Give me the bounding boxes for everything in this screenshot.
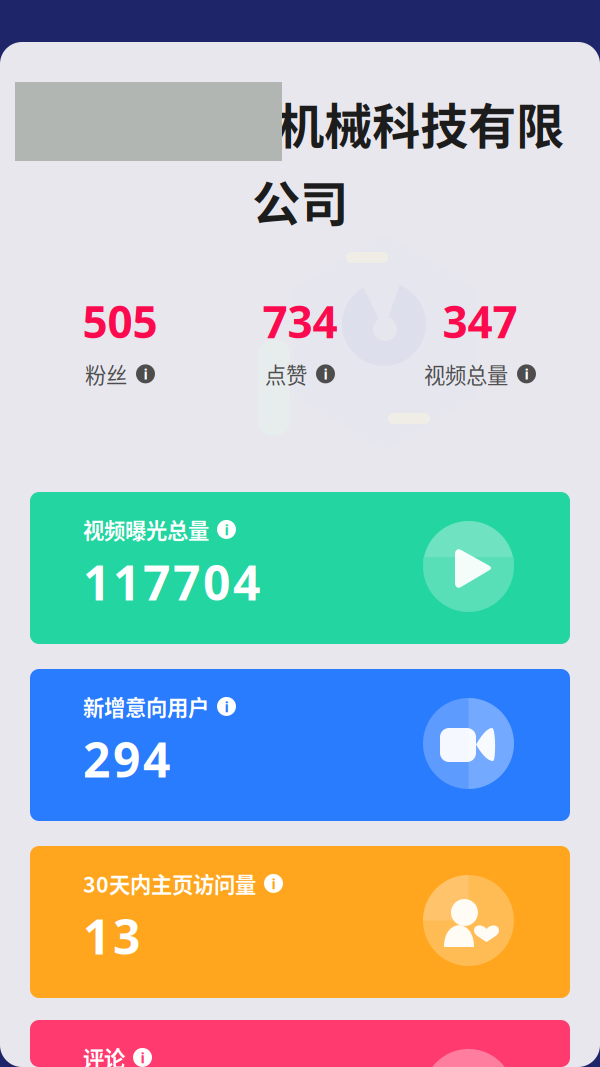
button[interactable]: 视频曝光总量 — [30, 492, 570, 644]
staticText: i — [140, 1048, 144, 1067]
staticText: i — [524, 364, 528, 384]
button[interactable]: 评论 — [30, 1020, 570, 1067]
staticText: 粉丝 — [85, 358, 127, 389]
button[interactable]: 新增意向用户 — [30, 669, 570, 821]
staticText: 505 — [82, 292, 157, 350]
staticText: i — [323, 364, 327, 384]
staticText: 13 — [83, 904, 140, 968]
staticText: 347 — [442, 292, 517, 350]
staticText: 新增意向用户 — [83, 691, 209, 722]
staticText: i — [271, 874, 275, 893]
button[interactable]: 734 — [210, 292, 390, 389]
staticText: 30天内主页访问量 — [83, 868, 256, 899]
staticText: 点赞 — [265, 358, 307, 389]
button[interactable]: 30天内主页访问量 — [30, 846, 570, 998]
staticText: i — [143, 364, 147, 384]
staticText: 青岛德瑞特机械科技有限公司 — [36, 88, 564, 235]
staticText: 评论 — [83, 1042, 125, 1067]
staticText: 视频曝光总量 — [83, 514, 209, 545]
staticText: i — [224, 697, 228, 716]
staticText: 视频总量 — [424, 358, 508, 389]
staticText: i — [224, 520, 228, 539]
button[interactable]: 347 — [390, 292, 570, 389]
staticText: 117704 — [83, 550, 260, 614]
staticText: 294 — [83, 727, 170, 791]
staticText: 734 — [262, 292, 337, 350]
button[interactable]: 505 — [30, 292, 210, 389]
